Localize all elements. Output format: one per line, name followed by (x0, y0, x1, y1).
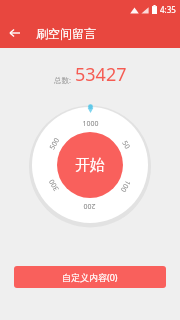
button[interactable]: 开始 (57, 132, 123, 198)
staticText: 300 (47, 177, 62, 193)
staticText: 总数: (54, 75, 72, 85)
staticText: 100 (118, 178, 133, 194)
button[interactable]: 自定义内容(0) (14, 266, 166, 288)
staticText: 刷空间留言 (36, 26, 96, 41)
staticText: 50 (119, 138, 132, 151)
staticText: 500 (47, 136, 62, 152)
staticText: 开始 (75, 156, 105, 175)
staticText: 自定义内容(0) (62, 271, 118, 283)
staticText: 4:35 (160, 4, 176, 15)
button[interactable]: Back (0, 18, 30, 48)
staticText: 1000 (82, 119, 99, 129)
staticText: 53427 (75, 62, 127, 87)
staticText: 200 (83, 201, 96, 211)
